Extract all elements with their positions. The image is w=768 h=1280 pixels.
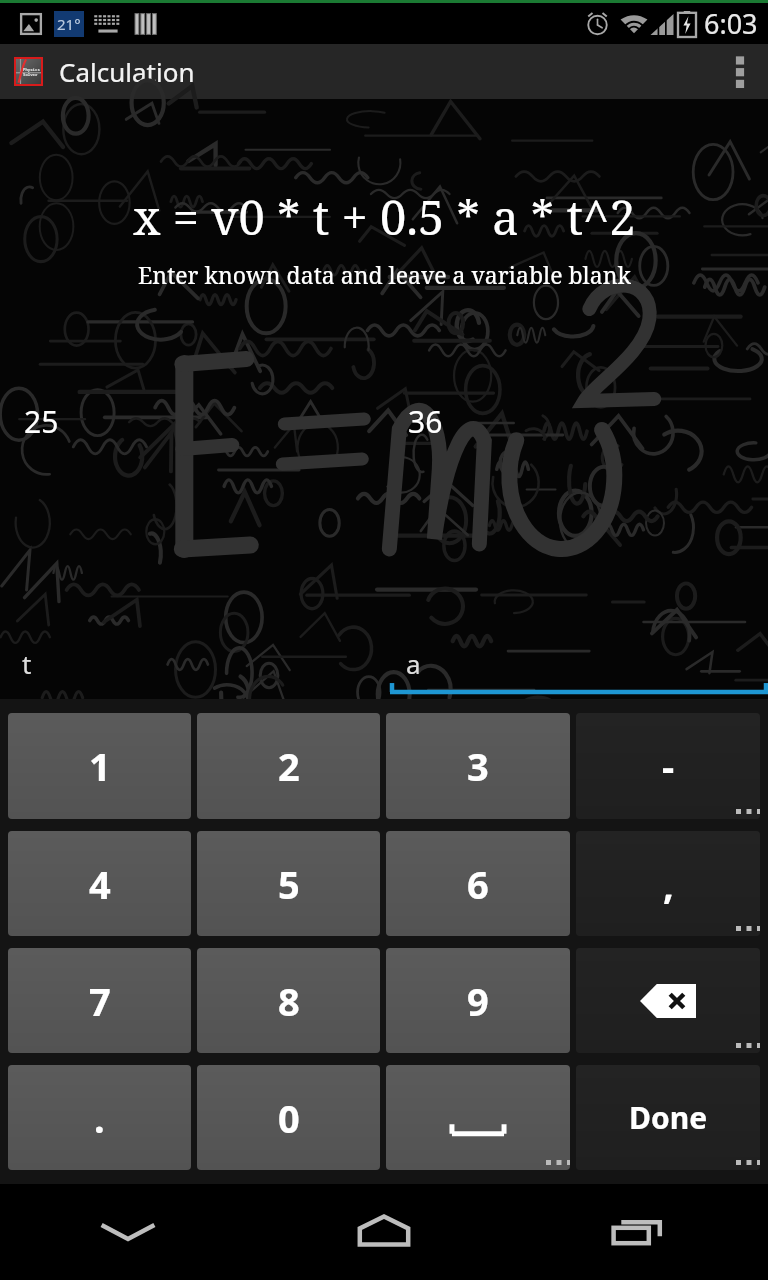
staticText: 6:03	[704, 5, 758, 42]
staticText: 0	[278, 1092, 300, 1144]
staticText: 1	[89, 740, 111, 792]
staticText: 5	[278, 858, 300, 910]
staticText: Calculation	[59, 54, 195, 89]
button[interactable]: Done	[576, 1065, 760, 1170]
button[interactable]: a	[384, 640, 768, 697]
button[interactable]: 4	[8, 831, 191, 936]
staticText: 4	[89, 858, 111, 910]
button[interactable]: ,	[576, 831, 760, 936]
button[interactable]: 7	[8, 948, 191, 1053]
button[interactable]: Hide keyboard	[0, 1184, 256, 1280]
staticText: 25	[24, 401, 59, 442]
button[interactable]: 3	[386, 713, 570, 819]
button[interactable]: 25	[0, 399, 384, 443]
staticText: 2	[278, 740, 300, 792]
button[interactable]: More options	[712, 44, 768, 99]
staticText: Enter known data and leave a variable bl…	[138, 259, 631, 290]
button[interactable]: Recent apps	[512, 1184, 768, 1280]
staticText: 6	[467, 858, 489, 910]
button[interactable]: 6	[386, 831, 570, 936]
button[interactable]: Space	[386, 1065, 570, 1170]
button[interactable]: 5	[197, 831, 380, 936]
staticText: -	[662, 740, 675, 792]
button[interactable]: 8	[197, 948, 380, 1053]
button[interactable]: 0	[197, 1065, 380, 1170]
staticText: 36	[408, 401, 443, 442]
staticText: Physics Solver	[23, 67, 40, 77]
button[interactable]: Backspace	[576, 948, 760, 1053]
staticText: 21°	[57, 14, 81, 34]
button[interactable]: 9	[386, 948, 570, 1053]
staticText: ,	[663, 858, 674, 910]
button[interactable]: .	[8, 1065, 191, 1170]
staticText: 9	[467, 975, 489, 1027]
staticText: x = v0 * t + 0.5 * a * t^2	[133, 185, 636, 249]
staticText: 3	[467, 740, 489, 792]
staticText: a	[406, 646, 421, 681]
button[interactable]: 1	[8, 713, 191, 819]
staticText: Done	[629, 1097, 708, 1138]
staticText: 8	[278, 975, 300, 1027]
button[interactable]: Home	[256, 1184, 512, 1280]
staticText: 7	[89, 975, 111, 1027]
staticText: t	[22, 646, 32, 681]
button[interactable]: 36	[384, 399, 768, 443]
staticText: .	[94, 1092, 105, 1144]
button[interactable]: t	[0, 640, 384, 697]
button[interactable]: -	[576, 713, 760, 819]
button[interactable]: 2	[197, 713, 380, 819]
